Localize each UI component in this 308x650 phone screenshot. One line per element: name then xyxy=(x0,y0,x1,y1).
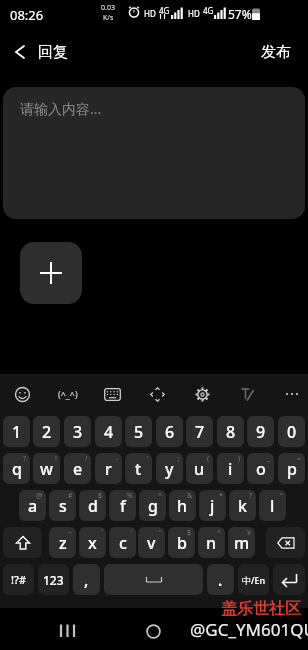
button[interactable]: 2 xyxy=(33,416,60,447)
staticText: 0 xyxy=(287,421,297,443)
staticText: t xyxy=(135,458,142,480)
staticText: 08:26 xyxy=(10,6,44,24)
button[interactable]: o xyxy=(247,453,274,484)
staticText: w xyxy=(40,458,53,480)
button[interactable]: s xyxy=(49,490,76,521)
staticText: y xyxy=(165,458,174,480)
staticText: e xyxy=(73,458,83,480)
button[interactable] xyxy=(104,564,203,595)
staticText: j xyxy=(210,495,215,517)
staticText: # xyxy=(68,491,73,501)
staticText: 123 xyxy=(43,572,64,588)
button[interactable]: 6 xyxy=(156,416,183,447)
button[interactable] xyxy=(3,527,42,558)
button[interactable] xyxy=(146,624,161,639)
staticText: g xyxy=(148,495,158,517)
button[interactable]: 123 xyxy=(38,564,69,595)
button[interactable]: 5 xyxy=(125,416,152,447)
button[interactable]: z xyxy=(49,527,76,558)
button[interactable] xyxy=(278,380,306,408)
button[interactable] xyxy=(266,527,305,558)
staticText: a xyxy=(28,495,38,517)
staticText: @GC_YM601QU xyxy=(190,618,308,641)
staticText: 6 xyxy=(165,421,175,443)
button[interactable]: !?# xyxy=(3,564,34,595)
button[interactable]: 4 xyxy=(95,416,122,447)
button[interactable]: t xyxy=(125,453,152,484)
button[interactable]: g xyxy=(139,490,166,521)
staticText: x xyxy=(88,532,97,554)
button[interactable]: 3 xyxy=(64,416,91,447)
staticText: r xyxy=(105,458,112,480)
staticText: v xyxy=(147,532,156,554)
button[interactable]: . xyxy=(207,564,234,595)
staticText: b xyxy=(177,532,187,554)
button[interactable]: w xyxy=(33,453,60,484)
button[interactable]: f xyxy=(109,490,136,521)
button[interactable]: m xyxy=(228,527,255,558)
staticText: n xyxy=(206,532,217,554)
staticText: / xyxy=(85,454,88,464)
button[interactable] xyxy=(98,380,126,408)
button[interactable]: , xyxy=(73,564,100,595)
button[interactable]: k xyxy=(229,490,256,521)
button[interactable]: r xyxy=(95,453,122,484)
button[interactable]: 9 xyxy=(247,416,274,447)
button[interactable]: (^_^) xyxy=(52,380,84,408)
button[interactable]: 请输入内容... xyxy=(3,87,305,219)
staticText: ( xyxy=(207,454,210,464)
staticText: & xyxy=(187,491,193,501)
staticText: (^_^) xyxy=(58,388,78,400)
button[interactable]: i xyxy=(217,453,244,484)
staticText: 3 xyxy=(73,421,83,443)
button[interactable]: j xyxy=(199,490,226,521)
button[interactable]: 8 xyxy=(217,416,244,447)
button[interactable]: d xyxy=(79,490,106,521)
staticText: l xyxy=(270,495,275,517)
button[interactable] xyxy=(6,38,34,66)
staticText: 5 xyxy=(134,421,144,443)
staticText: s xyxy=(59,495,67,517)
staticText: i xyxy=(228,458,233,480)
button[interactable]: v xyxy=(138,527,165,558)
button[interactable]: c xyxy=(109,527,136,558)
button[interactable] xyxy=(59,624,79,638)
button[interactable]: 1 xyxy=(3,416,30,447)
staticText: 中/En xyxy=(242,574,266,586)
button[interactable] xyxy=(8,380,36,408)
button[interactable] xyxy=(143,380,171,408)
button[interactable]: q xyxy=(3,453,30,484)
button[interactable]: 0 xyxy=(278,416,305,447)
button[interactable]: x xyxy=(79,527,106,558)
button[interactable]: l xyxy=(259,490,286,521)
staticText: ? xyxy=(249,491,253,501)
button[interactable] xyxy=(20,242,82,304)
button[interactable] xyxy=(188,380,216,408)
button[interactable] xyxy=(233,380,261,408)
staticText: h xyxy=(177,495,188,517)
staticText: 4 xyxy=(104,421,114,443)
button[interactable]: 发布 xyxy=(250,34,302,70)
staticText: m xyxy=(234,532,250,554)
staticText: HD xyxy=(144,8,156,19)
button[interactable]: y xyxy=(156,453,183,484)
button[interactable] xyxy=(273,564,305,595)
staticText: " xyxy=(280,491,283,501)
staticText: ! xyxy=(55,454,57,464)
staticText: * xyxy=(219,491,223,501)
button[interactable]: 7 xyxy=(186,416,213,447)
button[interactable]: e xyxy=(64,453,91,484)
staticText: 请输入内容... xyxy=(20,99,102,118)
staticText: ' xyxy=(147,454,149,464)
button[interactable]: p xyxy=(278,453,305,484)
button[interactable]: a xyxy=(19,490,46,521)
button[interactable]: 中/En xyxy=(238,564,269,595)
button[interactable]: h xyxy=(169,490,196,521)
staticText: ¥ xyxy=(247,528,252,538)
staticText: 2 xyxy=(42,421,52,443)
staticText: p xyxy=(287,458,297,480)
button[interactable]: n xyxy=(198,527,225,558)
button[interactable]: u xyxy=(186,453,213,484)
button[interactable]: b xyxy=(168,527,195,558)
staticText: HD xyxy=(188,8,200,19)
